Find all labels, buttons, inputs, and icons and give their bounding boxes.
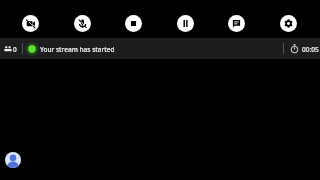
button[interactable]: Mute microphone bbox=[74, 15, 91, 32]
staticText: 0 bbox=[13, 45, 17, 54]
staticText: 00:05 bbox=[302, 45, 319, 54]
button[interactable]: Stop stream bbox=[125, 15, 142, 32]
staticText: Your stream has started bbox=[40, 45, 115, 54]
button[interactable]: Turn camera off bbox=[22, 15, 39, 32]
button[interactable]: Chat bbox=[228, 15, 245, 32]
button[interactable]: Pause stream bbox=[177, 15, 194, 32]
button[interactable]: Account bbox=[5, 152, 21, 168]
button[interactable]: Settings bbox=[280, 15, 297, 32]
